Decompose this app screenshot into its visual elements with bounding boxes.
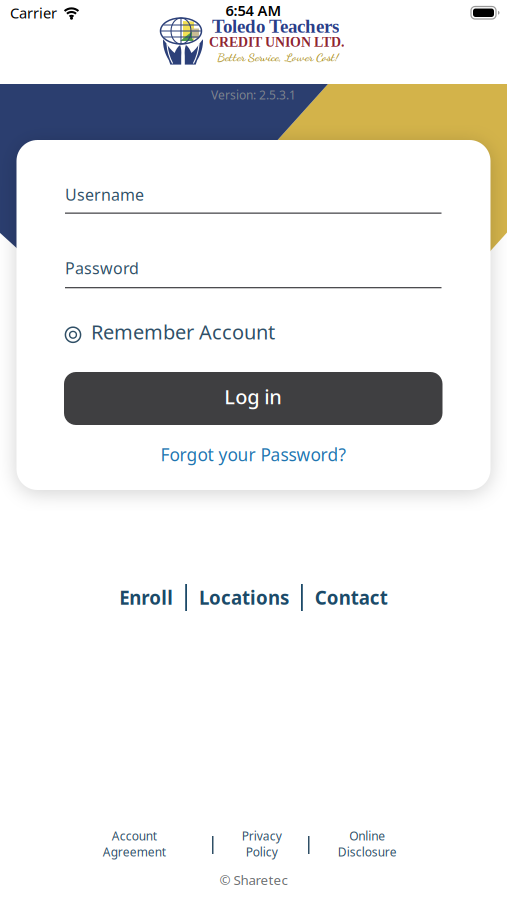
button[interactable]: Contact (315, 585, 388, 610)
button[interactable]: Locations (199, 585, 289, 610)
button[interactable]: Privacy Policy (207, 828, 317, 860)
staticText: Locations (199, 585, 289, 610)
button[interactable]: Enroll (119, 585, 173, 610)
button[interactable]: Remember Account (64, 318, 275, 345)
button[interactable]: Password (65, 257, 441, 286)
staticText: © Sharetec (219, 871, 287, 889)
staticText: Carrier (10, 3, 57, 22)
staticText: Better Service, Lower Cost! (217, 50, 339, 65)
staticText: Password (65, 257, 139, 279)
staticText: Toledo Teachers (212, 16, 339, 37)
button[interactable]: Account Agreement (79, 828, 189, 860)
button[interactable]: Online Disclosure (312, 828, 422, 860)
button[interactable]: Forgot your Password? (160, 443, 346, 466)
staticText: Forgot your Password? (160, 443, 346, 466)
staticText: Enroll (119, 585, 173, 610)
staticText: Account Agreement (102, 828, 165, 860)
staticText: Contact (315, 585, 388, 610)
staticText: Remember Account (91, 318, 275, 345)
button[interactable]: Username (65, 184, 441, 212)
staticText: Online Disclosure (337, 828, 396, 860)
staticText: Privacy Policy (242, 828, 282, 860)
button[interactable]: © Sharetec (219, 871, 287, 889)
staticText: Version: 2.5.3.1 (211, 87, 296, 103)
staticText: Username (65, 184, 144, 205)
staticText: Log in (224, 383, 282, 410)
button[interactable]: Log in (64, 372, 442, 425)
staticText: 6:54 AM (225, 0, 281, 20)
staticText: CREDIT UNION LTD. (209, 34, 344, 50)
